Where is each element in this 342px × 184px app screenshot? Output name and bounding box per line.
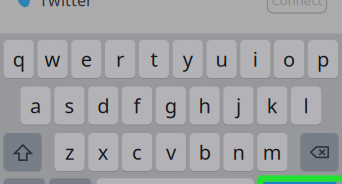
button[interactable]: o [274,39,304,78]
staticText: x [98,139,109,165]
button[interactable]: s [54,86,84,125]
staticText: u [215,46,227,72]
button[interactable]: c [122,132,152,171]
staticText: Connect [271,0,322,9]
staticText: l [303,92,308,119]
button[interactable]: Delete [300,133,338,171]
staticText: c [132,139,142,165]
staticText: b [199,139,211,165]
button[interactable]: h [189,86,220,125]
staticText: r [116,46,124,72]
staticText: j [236,92,241,119]
button[interactable]: x [88,132,118,171]
button[interactable]: b [190,132,220,171]
staticText: k [267,92,278,119]
button[interactable]: j [223,86,253,125]
button[interactable]: q [4,39,34,78]
staticText: z [65,139,74,165]
button[interactable]: r [105,39,135,78]
button[interactable]: g [156,86,186,125]
button[interactable]: n [223,132,254,171]
button[interactable]: m [257,132,287,171]
staticText: q [13,46,25,72]
staticText: Twitter [39,0,93,11]
staticText: f [133,92,140,119]
staticText: y [183,46,193,72]
button[interactable]: Shift [4,133,42,171]
staticText: w [44,46,60,72]
staticText: g [165,92,177,119]
button[interactable]: y [173,39,203,78]
button[interactable]: t [139,39,169,78]
staticText: e [81,46,92,72]
button[interactable]: f [122,86,152,125]
staticText: t [150,46,157,72]
button[interactable]: p [308,39,338,78]
staticText: a [30,92,41,119]
button[interactable]: v [156,132,186,171]
button[interactable]: d [88,86,118,125]
staticText: p [317,46,329,72]
staticText: i [253,46,258,72]
button[interactable]: w [37,39,68,78]
button[interactable]: e [71,39,101,78]
button[interactable]: l [291,86,321,125]
button[interactable]: i [240,39,270,78]
staticText: h [199,92,211,119]
staticText: d [97,92,109,119]
staticText: n [232,139,244,165]
staticText: m [263,139,282,165]
button[interactable]: a [20,86,51,125]
staticText: o [283,46,295,72]
button[interactable]: Connect [267,0,326,13]
staticText: v [166,139,176,165]
staticText: s [64,92,74,119]
button[interactable]: z [54,132,85,171]
button[interactable]: u [206,39,237,78]
button[interactable]: k [257,86,287,125]
